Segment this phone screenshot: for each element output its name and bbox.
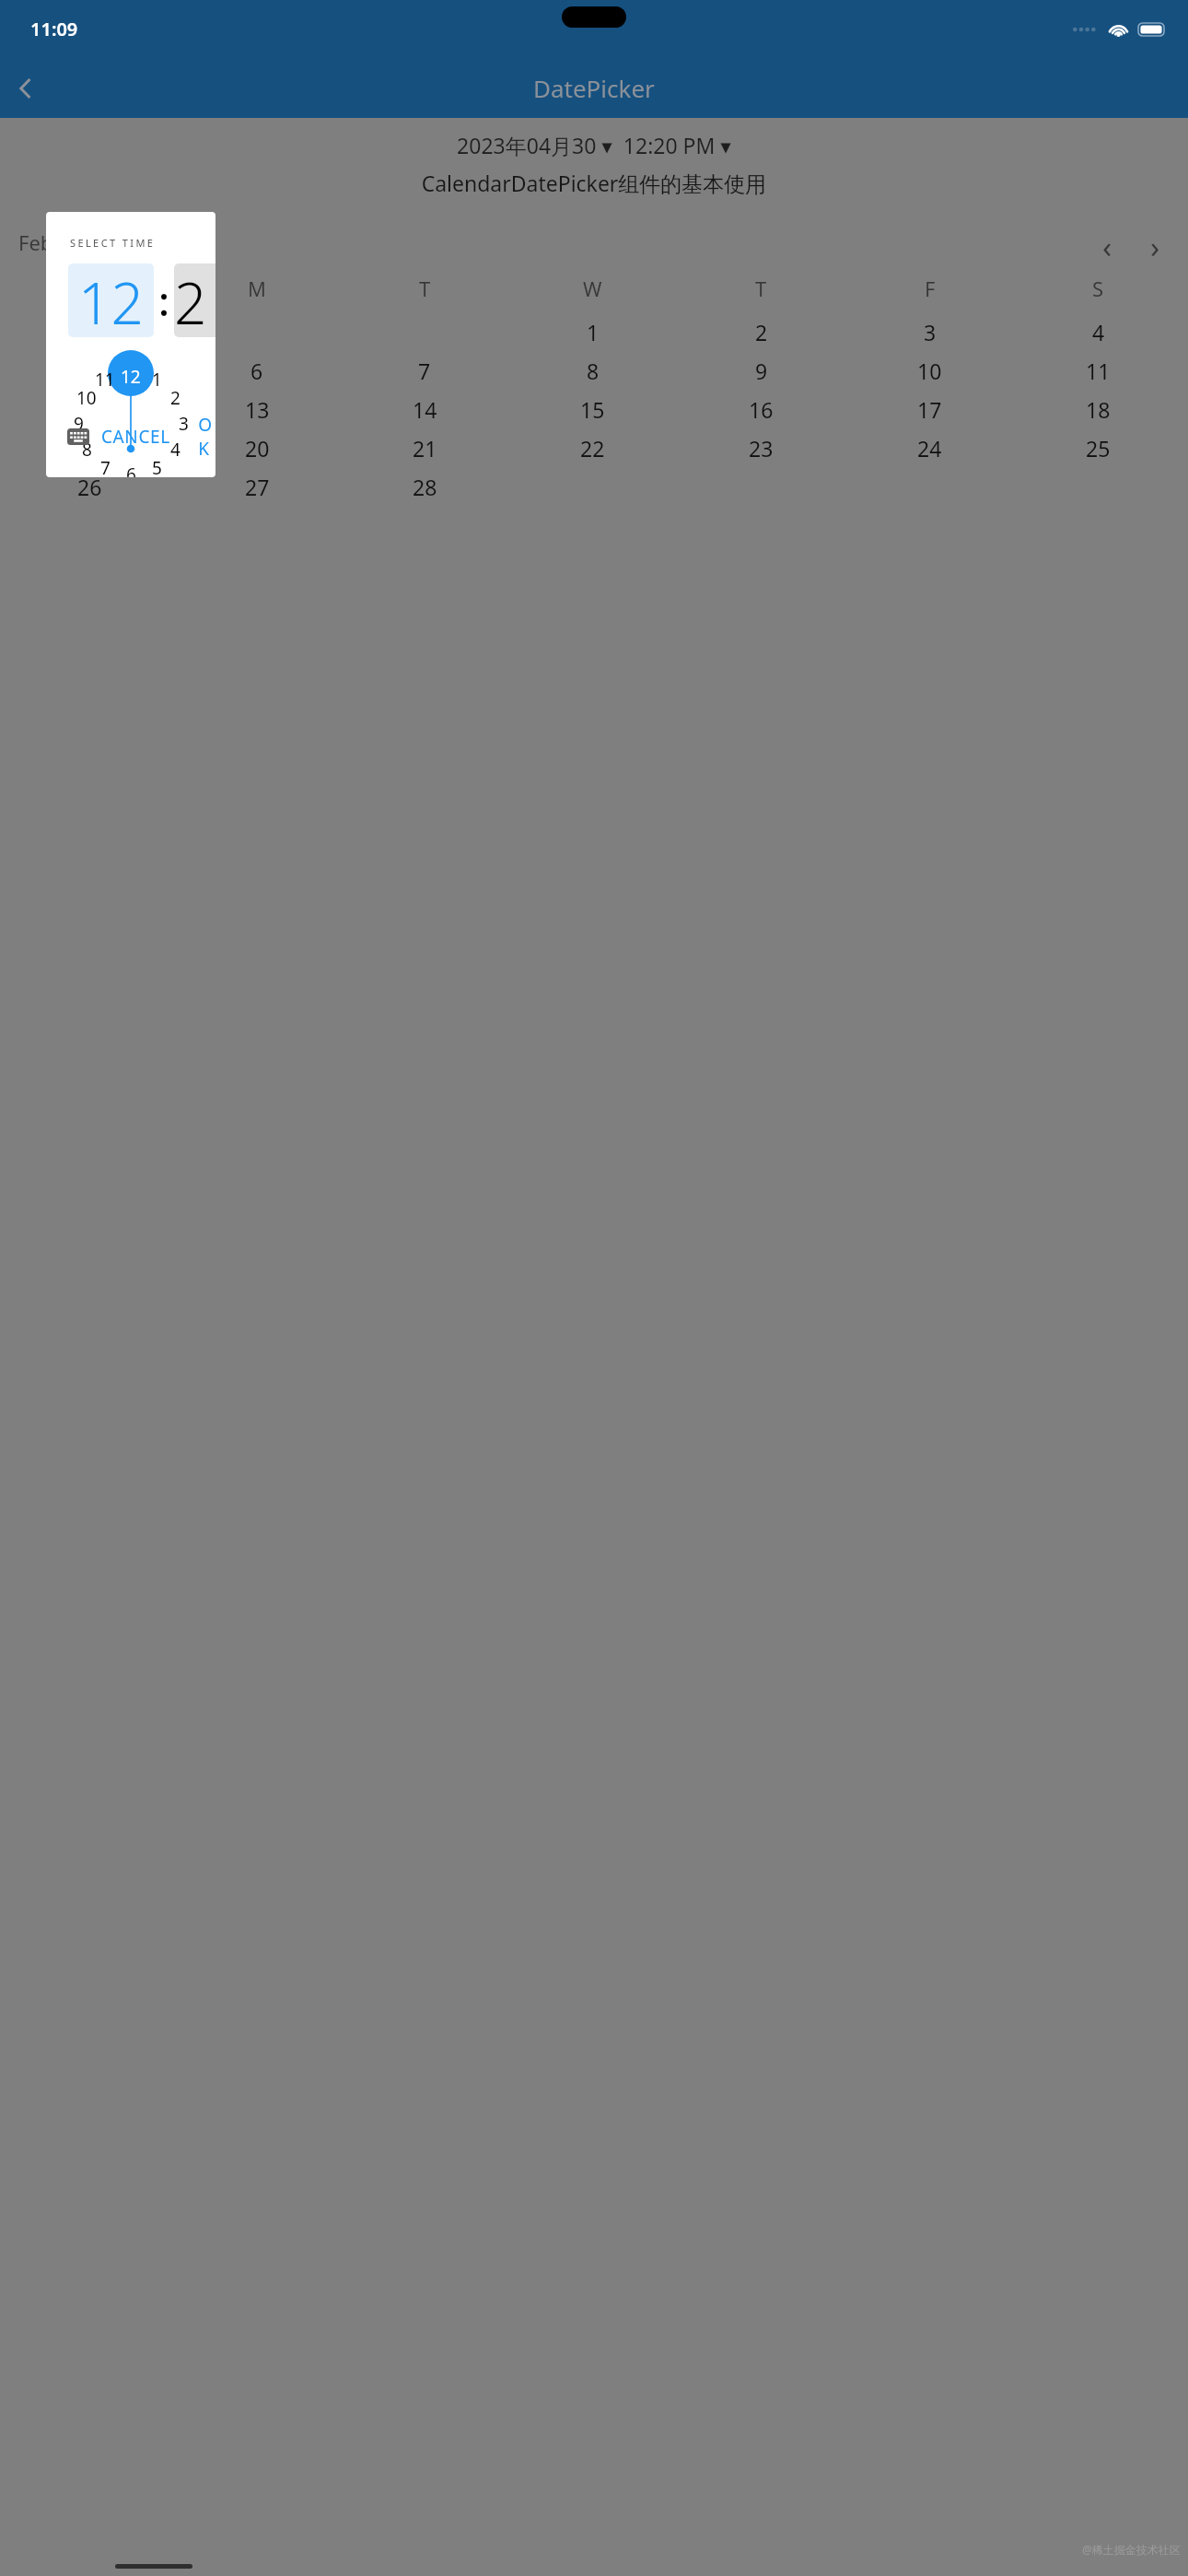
button[interactable]: 13 <box>173 395 341 418</box>
button[interactable]: 9 <box>65 411 91 437</box>
button[interactable]: 10 <box>74 385 99 411</box>
button[interactable]: 16 <box>677 395 845 418</box>
button[interactable]: 14 <box>341 395 508 418</box>
button[interactable]: 18 <box>1014 395 1182 418</box>
button[interactable]: 2 <box>162 385 188 411</box>
button[interactable]: Switch to keyboard input <box>63 421 94 452</box>
button[interactable]: 1 <box>144 367 169 392</box>
staticText: 6 <box>250 357 263 380</box>
button[interactable]: 3 <box>170 411 196 437</box>
staticText: 25 <box>1086 434 1111 457</box>
button[interactable]: 15 <box>508 395 677 418</box>
staticText: SELECT TIME <box>70 236 156 250</box>
button[interactable]: 8 <box>74 437 99 463</box>
button[interactable]: 17 <box>845 395 1014 418</box>
staticText: 12 <box>78 263 144 337</box>
staticText: 3 <box>924 318 937 341</box>
button[interactable]: 1 <box>508 318 677 341</box>
staticText: 3 <box>179 412 189 436</box>
staticText: 11 <box>95 368 115 392</box>
button[interactable]: Next month <box>1138 226 1171 259</box>
button[interactable]: 22 <box>508 434 677 457</box>
staticText: 26 <box>77 473 102 496</box>
staticText: M <box>248 275 266 302</box>
button[interactable]: 3 <box>845 318 1014 341</box>
staticText: 28 <box>413 473 437 496</box>
staticText: 11:09 <box>30 17 78 41</box>
staticText: › <box>1150 226 1160 259</box>
staticText: CalendarDatePicker组件的基本使用 <box>0 169 1188 197</box>
button[interactable]: 12 <box>6 395 173 418</box>
staticText: 16 <box>749 395 774 418</box>
button[interactable]: 5 <box>144 455 169 477</box>
staticText: : <box>158 273 169 328</box>
button[interactable]: CANCEL <box>94 417 178 456</box>
button[interactable]: 28 <box>341 473 508 496</box>
staticText: T <box>755 275 767 302</box>
button[interactable]: 26 <box>6 473 173 496</box>
button[interactable]: OK <box>191 405 201 468</box>
button[interactable]: 9 <box>677 357 845 380</box>
button[interactable]: 20 <box>173 434 341 457</box>
staticText: 19 <box>77 434 102 457</box>
button[interactable]: 19 <box>6 434 173 457</box>
button[interactable]: 23 <box>677 434 845 457</box>
button[interactable]: 8 <box>508 357 677 380</box>
button[interactable]: Back <box>4 66 48 111</box>
staticText: 9 <box>74 412 84 436</box>
staticText: 2 <box>755 318 768 341</box>
staticText: F <box>925 275 936 302</box>
staticText: 11 <box>1086 357 1111 380</box>
staticText: 1 <box>587 318 600 341</box>
staticText: 7 <box>100 456 111 477</box>
staticText: DatePicker <box>533 72 655 104</box>
button[interactable]: 27 <box>173 473 341 496</box>
staticText: 9 <box>755 357 768 380</box>
button[interactable]: 4 <box>162 437 188 463</box>
staticText: 18 <box>1086 395 1111 418</box>
staticText: 12 <box>77 395 102 418</box>
staticText: 20 <box>245 434 270 457</box>
button[interactable]: 21 <box>341 434 508 457</box>
staticText: 20 <box>174 263 215 337</box>
button[interactable]: February 2023 ▾ <box>17 223 173 262</box>
staticText: 8 <box>82 438 92 462</box>
staticText: 7 <box>418 357 431 380</box>
button[interactable]: 11 <box>1014 357 1182 380</box>
button[interactable] <box>173 318 341 341</box>
staticText: 10 <box>76 386 97 410</box>
staticText: 12 <box>121 365 141 389</box>
button[interactable]: 10 <box>845 357 1014 380</box>
staticText: 6 <box>126 463 136 477</box>
staticText: 24 <box>917 434 942 457</box>
staticText: ‹ <box>1102 226 1112 259</box>
staticText: 15 <box>580 395 605 418</box>
staticText: 23 <box>749 434 774 457</box>
staticText: February 2023 ▾ <box>18 228 171 256</box>
staticText: 17 <box>917 395 942 418</box>
staticText: 13 <box>245 395 270 418</box>
staticText: S <box>84 275 96 302</box>
button[interactable]: 7 <box>341 357 508 380</box>
button[interactable]: 5 <box>6 357 173 380</box>
button[interactable]: 12 <box>68 263 154 337</box>
button[interactable]: 20 <box>174 263 215 337</box>
button[interactable]: 7 <box>92 455 118 477</box>
button[interactable]: 11 <box>92 367 118 392</box>
staticText: 1 <box>152 368 162 392</box>
button[interactable]: 24 <box>845 434 1014 457</box>
staticText: 4 <box>1092 318 1105 341</box>
button[interactable]: 4 <box>1014 318 1182 341</box>
button[interactable]: 6 <box>118 462 144 477</box>
button[interactable]: Previous month <box>1090 226 1124 259</box>
button[interactable]: 25 <box>1014 434 1182 457</box>
button[interactable]: 2 <box>677 318 845 341</box>
button[interactable] <box>6 318 173 341</box>
button[interactable]: 6 <box>173 357 341 380</box>
